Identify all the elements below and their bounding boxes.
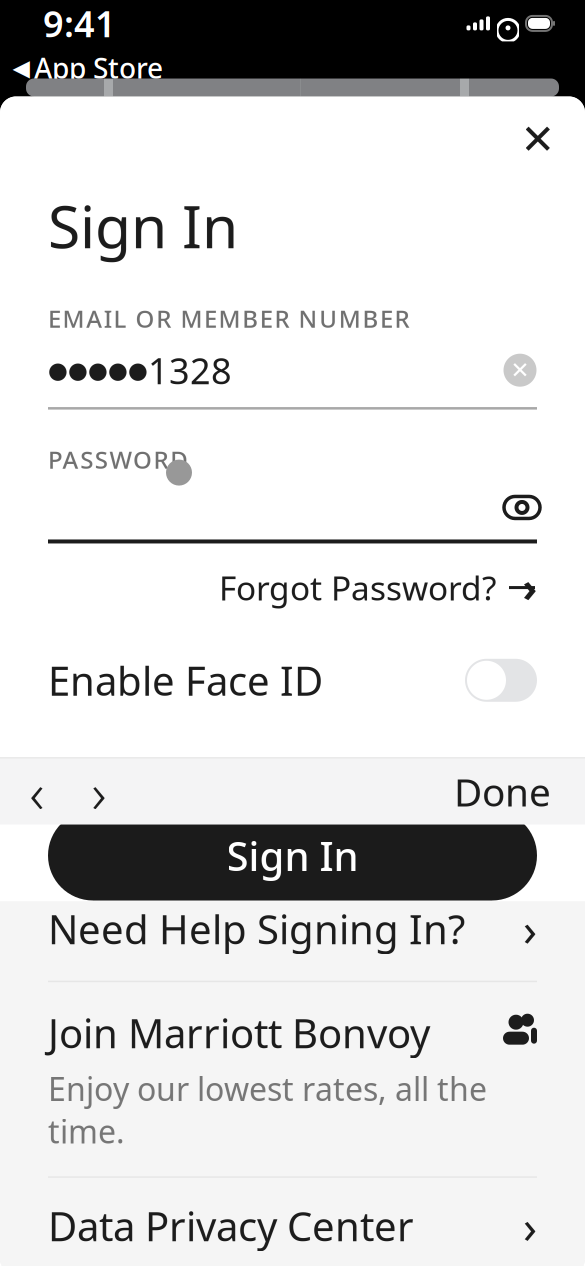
staticText: Done bbox=[454, 766, 551, 817]
button[interactable]: Data Privacy Center bbox=[0, 1178, 585, 1266]
staticText: ✕ bbox=[510, 357, 529, 383]
staticText: EMAIL OR MEMBER NUMBER bbox=[48, 302, 410, 334]
staticText: Join Marriott Bonvoy bbox=[48, 1006, 430, 1059]
staticText: Sign In bbox=[48, 186, 238, 264]
button[interactable]: Forgot Password? bbox=[219, 557, 537, 618]
staticText: › bbox=[522, 560, 537, 613]
staticText: Forgot Password? bbox=[219, 565, 496, 610]
button[interactable]: Close bbox=[513, 114, 563, 164]
staticText: 9:41 bbox=[43, 0, 116, 47]
button[interactable]: Next field bbox=[68, 758, 130, 824]
staticText: Enjoy our lowest rates, all the time. bbox=[48, 1067, 487, 1152]
button[interactable]: Done bbox=[442, 758, 563, 824]
button[interactable]: Need Help Signing In? bbox=[0, 877, 585, 981]
staticText: App Store bbox=[34, 49, 163, 86]
staticText: ✕ bbox=[520, 116, 555, 163]
button[interactable]: Previous field bbox=[6, 758, 68, 824]
button[interactable]: ◀ bbox=[0, 47, 163, 90]
button[interactable]: Sign In bbox=[0, 810, 585, 900]
button[interactable]: Clear text bbox=[497, 347, 543, 393]
staticText: Sign In bbox=[226, 829, 358, 882]
staticText: Enable Face ID bbox=[48, 654, 323, 707]
button[interactable]: Show password bbox=[497, 485, 547, 529]
staticText: › bbox=[523, 899, 537, 959]
staticText: 1328 bbox=[148, 346, 232, 394]
staticText: › bbox=[523, 1196, 537, 1256]
staticText: PASSWORD bbox=[48, 444, 188, 475]
staticText: Need Help Signing In? bbox=[48, 902, 465, 955]
staticText: ●●●●● bbox=[48, 357, 148, 383]
button[interactable]: Enable Face ID bbox=[465, 659, 537, 702]
staticText: Data Privacy Center bbox=[48, 1199, 414, 1252]
staticText: ‹ bbox=[29, 754, 44, 829]
button[interactable]: Join Marriott Bonvoy bbox=[0, 982, 585, 1176]
staticText: › bbox=[91, 754, 106, 829]
staticText: ◀ bbox=[12, 55, 29, 81]
